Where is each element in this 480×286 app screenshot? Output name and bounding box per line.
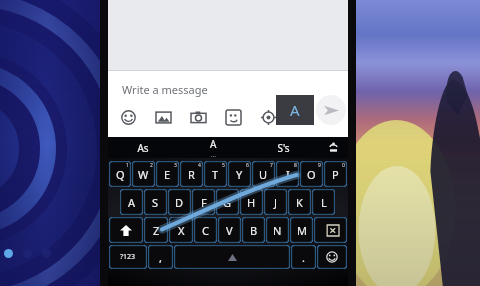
button[interactable]: Send xyxy=(316,95,346,125)
staticText: X xyxy=(178,223,185,238)
button[interactable]: Shift xyxy=(109,217,143,243)
button[interactable]: M xyxy=(290,217,313,243)
staticText: T xyxy=(212,167,219,182)
button[interactable]: Location xyxy=(258,107,278,127)
staticText: U xyxy=(259,167,268,182)
staticText: A xyxy=(210,137,217,151)
staticText: S's xyxy=(277,141,290,155)
staticText: I xyxy=(286,167,290,182)
staticText: L xyxy=(321,195,327,210)
button[interactable]: U xyxy=(252,161,275,187)
button[interactable]: K xyxy=(288,189,311,215)
staticText: 2 xyxy=(150,162,153,169)
staticText: 4 xyxy=(198,162,201,169)
staticText: 7 xyxy=(270,162,273,169)
button[interactable]: . xyxy=(291,245,316,269)
button[interactable]: D xyxy=(168,189,191,215)
button[interactable]: Gallery xyxy=(153,107,173,127)
staticText: N xyxy=(273,223,282,238)
button[interactable]: J xyxy=(264,189,287,215)
button[interactable]: Emoji xyxy=(317,245,347,269)
staticText: ?123 xyxy=(120,252,136,262)
staticText: 9 xyxy=(318,162,321,169)
staticText: R xyxy=(188,167,195,182)
staticText: . xyxy=(302,250,305,265)
staticText: 3 xyxy=(174,162,177,169)
staticText: F xyxy=(201,195,207,210)
staticText: E xyxy=(164,167,171,182)
button[interactable]: T xyxy=(204,161,227,187)
button[interactable]: As xyxy=(108,137,178,158)
button[interactable]: E xyxy=(156,161,179,187)
staticText: C xyxy=(202,223,209,238)
staticText: Q xyxy=(116,167,125,182)
button[interactable]: Emoji xyxy=(118,107,138,127)
staticText: Y xyxy=(236,167,243,182)
staticText: Write a message xyxy=(122,82,208,97)
button[interactable]: , xyxy=(148,245,173,269)
button[interactable]: Keyboard settings xyxy=(318,137,348,158)
button[interactable]: B xyxy=(242,217,265,243)
button[interactable]: Y xyxy=(228,161,251,187)
staticText: ... xyxy=(211,151,216,158)
staticText: Z xyxy=(153,223,160,238)
button[interactable]: Space xyxy=(174,245,290,269)
staticText: , xyxy=(159,250,162,265)
staticText: 0 xyxy=(342,162,345,169)
staticText: P xyxy=(332,167,339,182)
button[interactable]: O xyxy=(300,161,323,187)
button[interactable]: H xyxy=(240,189,263,215)
button[interactable]: ?123 xyxy=(109,245,147,269)
button[interactable]: G xyxy=(216,189,239,215)
staticText: W xyxy=(138,167,149,182)
staticText: A xyxy=(290,100,300,120)
staticText: S xyxy=(152,195,159,210)
button[interactable]: S's xyxy=(248,137,318,158)
staticText: 6 xyxy=(246,162,249,169)
button[interactable]: I xyxy=(276,161,299,187)
button[interactable]: L xyxy=(312,189,335,215)
button[interactable]: Delete xyxy=(314,217,347,243)
staticText: 5 xyxy=(222,162,225,169)
staticText: J xyxy=(274,195,278,210)
button[interactable]: C xyxy=(194,217,217,243)
staticText: G xyxy=(223,195,232,210)
button[interactable]: Camera xyxy=(188,107,208,127)
button[interactable]: F xyxy=(192,189,215,215)
staticText: As xyxy=(137,141,149,155)
button[interactable]: R xyxy=(180,161,203,187)
staticText: 8 xyxy=(294,162,297,169)
button[interactable]: Z xyxy=(144,217,168,243)
staticText: 1 xyxy=(126,162,129,169)
button[interactable]: S xyxy=(144,189,167,215)
button[interactable]: Q xyxy=(109,161,131,187)
button[interactable]: W xyxy=(132,161,155,187)
staticText: O xyxy=(307,167,316,182)
staticText: M xyxy=(297,223,307,238)
staticText: V xyxy=(226,223,233,238)
button[interactable]: X xyxy=(169,217,193,243)
button[interactable]: Sticker xyxy=(223,107,243,127)
button[interactable]: A xyxy=(210,137,217,158)
button[interactable]: A xyxy=(276,95,314,125)
staticText: K xyxy=(296,195,303,210)
staticText: A xyxy=(128,195,136,210)
button[interactable]: V xyxy=(218,217,241,243)
staticText: D xyxy=(175,195,184,210)
staticText: H xyxy=(247,195,256,210)
staticText: B xyxy=(250,223,258,238)
button[interactable]: P xyxy=(324,161,347,187)
button[interactable]: N xyxy=(266,217,289,243)
button[interactable]: A xyxy=(120,189,143,215)
